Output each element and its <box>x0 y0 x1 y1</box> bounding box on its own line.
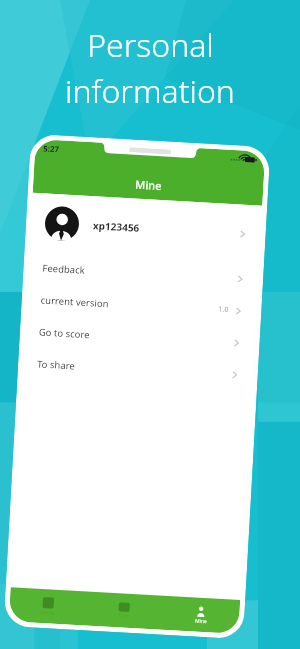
staticText: 5:27 <box>43 142 59 154</box>
button[interactable]: current version <box>26 283 257 327</box>
button[interactable]: Feedback <box>28 251 259 296</box>
staticText: current version <box>40 293 109 310</box>
staticText: Feedback <box>42 261 86 277</box>
staticText: 1.0 <box>218 304 229 315</box>
staticText: Go to score <box>38 325 90 341</box>
staticText: information <box>65 69 235 113</box>
button[interactable]: Mine <box>161 596 240 634</box>
staticText: xp123456 <box>92 218 140 235</box>
button[interactable]: To share <box>22 347 254 391</box>
button[interactable]: List <box>85 591 163 630</box>
staticText: Personal <box>87 23 214 67</box>
button[interactable]: Home <box>9 587 86 625</box>
staticText: Mine <box>195 618 207 625</box>
button[interactable]: xp123456 <box>29 193 262 264</box>
staticText: To share <box>37 357 75 372</box>
staticText: Mine <box>135 177 163 193</box>
button[interactable]: Go to score <box>24 315 255 359</box>
